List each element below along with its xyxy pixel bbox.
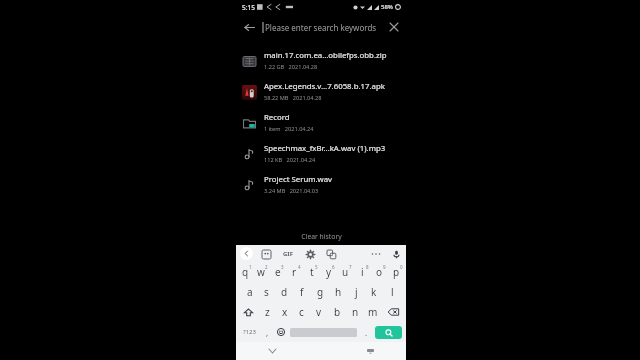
staticText: z: [265, 305, 270, 319]
staticText: 58.22 MB 2021.04.28: [264, 94, 322, 102]
button[interactable]: Translate: [325, 248, 337, 260]
staticText: GIF: [283, 250, 293, 258]
button[interactable]: Voice input: [390, 248, 402, 260]
staticText: q: [242, 265, 249, 279]
button[interactable]: c: [293, 302, 310, 322]
staticText: 6: [332, 264, 335, 270]
button[interactable]: Apex.Legends.v…7.6058.b.17.apk: [236, 76, 406, 107]
staticText: t: [310, 265, 314, 279]
staticText: y: [326, 265, 332, 279]
staticText: w: [257, 265, 265, 279]
staticText: Apex.Legends.v…7.6058.b.17.apk: [264, 81, 385, 92]
staticText: 0: [400, 264, 403, 270]
staticText: g: [317, 285, 324, 299]
staticText: .: [365, 327, 368, 338]
button[interactable]: h: [329, 282, 347, 302]
staticText: 112 KB 2021.04.24: [264, 156, 316, 164]
button[interactable]: Backspace: [382, 302, 405, 322]
staticText: Speechmax_fxBr…kA.wav (1).mp3: [264, 143, 386, 154]
staticText: 58%: [381, 3, 393, 11]
staticText: d: [281, 285, 288, 299]
button[interactable]: o: [371, 262, 388, 282]
staticText: v: [316, 305, 322, 319]
button[interactable]: j: [347, 282, 365, 302]
staticText: 1 item 2021.04.24: [264, 125, 314, 133]
button[interactable]: p: [388, 262, 405, 282]
button[interactable]: a: [241, 282, 258, 302]
button[interactable]: s: [258, 282, 275, 302]
staticText: 8: [366, 264, 369, 270]
button[interactable]: Search: [375, 326, 402, 339]
button[interactable]: GIF: [281, 248, 295, 260]
button[interactable]: v: [310, 302, 328, 322]
staticText: n: [352, 305, 359, 319]
button[interactable]: Back: [236, 14, 262, 40]
button[interactable]: n: [346, 302, 364, 322]
staticText: a: [247, 285, 253, 299]
button[interactable]: y: [320, 262, 337, 282]
staticText: e: [275, 265, 281, 279]
staticText: x: [282, 305, 288, 319]
staticText: Please enter search keywords: [265, 22, 382, 33]
button[interactable]: w: [253, 262, 269, 282]
button[interactable]: q: [237, 262, 253, 282]
staticText: Project Serum.wav: [264, 174, 333, 185]
staticText: o: [376, 265, 383, 279]
button[interactable]: e: [269, 262, 286, 282]
button[interactable]: b: [328, 302, 346, 322]
button[interactable]: m: [364, 302, 382, 322]
staticText: s: [264, 285, 269, 299]
staticText: k: [371, 285, 377, 299]
button[interactable]: k: [365, 282, 383, 302]
button[interactable]: d: [275, 282, 293, 302]
button[interactable]: Emoji: [273, 322, 288, 342]
staticText: 1.22 GB 2021.04.28: [264, 63, 318, 71]
staticText: p: [393, 265, 400, 279]
button[interactable]: Hide keyboard: [361, 342, 379, 360]
staticText: ?123: [243, 328, 256, 336]
staticText: u: [342, 265, 349, 279]
staticText: 1: [249, 264, 252, 270]
staticText: 9: [383, 264, 386, 270]
button[interactable]: g: [311, 282, 329, 302]
staticText: h: [335, 285, 342, 299]
button[interactable]: ?123: [238, 322, 261, 342]
staticText: c: [299, 305, 304, 319]
button[interactable]: z: [259, 302, 276, 322]
button[interactable]: u: [337, 262, 354, 282]
button[interactable]: i: [354, 262, 371, 282]
button[interactable]: More options: [369, 250, 383, 258]
staticText: 4: [298, 264, 301, 270]
button[interactable]: Record: [236, 107, 406, 138]
button[interactable]: Project Serum.wav: [236, 169, 406, 200]
button[interactable]: l: [383, 282, 401, 302]
button[interactable]: ,: [261, 322, 273, 342]
button[interactable]: x: [276, 302, 293, 322]
staticText: 2: [265, 264, 268, 270]
staticText: ,: [266, 327, 269, 338]
button[interactable]: r: [286, 262, 303, 282]
button[interactable]: Clear text: [382, 15, 406, 39]
staticText: r: [292, 265, 297, 279]
button[interactable]: Shift: [237, 302, 259, 322]
button[interactable]: Stickers: [260, 248, 272, 260]
staticText: 7: [349, 264, 352, 270]
staticText: 3.24 MB 2021.04.03: [264, 187, 319, 195]
staticText: i: [361, 265, 364, 279]
button[interactable]: Collapse toolbar: [240, 247, 253, 260]
button[interactable]: f: [293, 282, 311, 302]
button[interactable]: t: [303, 262, 320, 282]
button[interactable]: Speechmax_fxBr…kA.wav (1).mp3: [236, 138, 406, 169]
button[interactable]: .: [359, 322, 373, 342]
staticText: Record: [264, 112, 290, 123]
staticText: main.17.com.ea…obilefps.obb.zip: [264, 50, 387, 61]
button[interactable]: main.17.com.ea…obilefps.obb.zip: [236, 45, 406, 76]
button[interactable]: Clear history: [236, 227, 406, 245]
staticText: f: [300, 285, 304, 299]
staticText: j: [355, 285, 358, 299]
staticText: 5: [315, 264, 318, 270]
button[interactable]: Back: [263, 342, 281, 360]
button[interactable]: Settings: [304, 248, 316, 260]
staticText: 5:15: [242, 3, 255, 12]
